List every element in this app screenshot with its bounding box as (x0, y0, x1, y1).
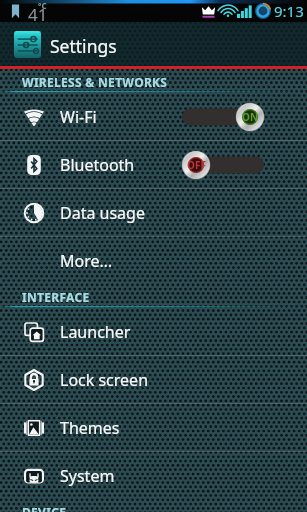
button[interactable]: Bluetooth (0, 141, 307, 188)
staticText: More… (60, 250, 113, 272)
staticText: Launcher (60, 321, 131, 343)
staticText: DEVICE (22, 504, 67, 512)
button[interactable]: More… (0, 237, 307, 284)
button[interactable]: Data usage (0, 189, 307, 236)
staticText: OFF (187, 158, 206, 172)
staticText: Lock screen (60, 369, 149, 391)
button[interactable]: Off (182, 151, 264, 179)
staticText: WIRELESS & NETWORKS (22, 74, 168, 90)
staticText: °C (38, 0, 47, 11)
button[interactable]: Wi-Fi (0, 93, 307, 140)
staticText: Settings (50, 34, 117, 58)
staticText: 41 (28, 3, 48, 25)
staticText: System (60, 465, 115, 487)
staticText: INTERFACE (22, 289, 90, 305)
button[interactable]: System (0, 452, 307, 499)
button[interactable]: Settings (0, 22, 307, 66)
button[interactable]: Themes (0, 404, 307, 451)
button[interactable]: Lock screen (0, 356, 307, 403)
button[interactable]: Launcher (0, 308, 307, 355)
staticText: ON (242, 110, 259, 124)
staticText: Bluetooth (60, 154, 135, 176)
staticText: Data usage (60, 202, 145, 224)
staticText: Wi-Fi (60, 106, 97, 128)
staticText: 9:13 (274, 1, 304, 21)
button[interactable]: On (182, 103, 264, 131)
staticText: Themes (60, 417, 120, 439)
